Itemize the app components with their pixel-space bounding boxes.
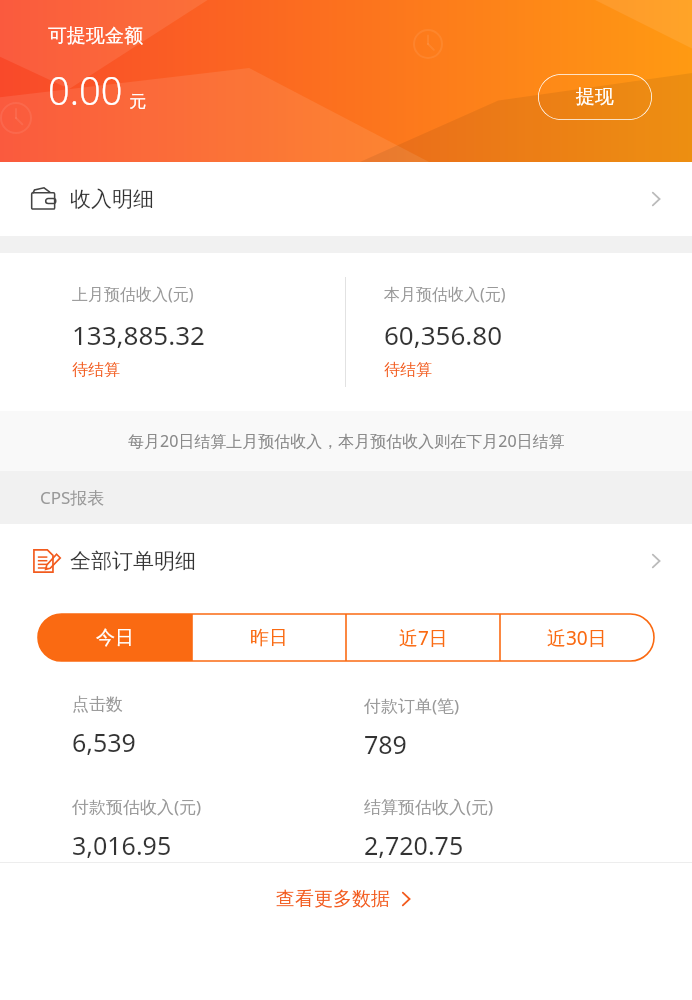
staticText: CPS报表 bbox=[40, 486, 105, 509]
button[interactable]: 近30日 bbox=[500, 614, 654, 661]
button[interactable]: 收入明细 bbox=[0, 162, 692, 236]
button[interactable]: 查看更多数据 bbox=[0, 863, 692, 935]
staticText: 每月20日结算上月预估收入，本月预估收入则在下月20日结算 bbox=[128, 430, 565, 452]
staticText: 昨日 bbox=[250, 626, 288, 650]
staticText: 近30日 bbox=[547, 625, 607, 651]
staticText: 6,539 bbox=[72, 725, 136, 759]
staticText: 提现 bbox=[576, 85, 614, 109]
staticText: 全部订单明细 bbox=[70, 548, 196, 574]
staticText: 本月预估收入(元) bbox=[384, 283, 506, 305]
staticText: 结算预估收入(元) bbox=[364, 795, 494, 818]
staticText: 2,720.75 bbox=[364, 828, 464, 862]
button[interactable]: 昨日 bbox=[192, 614, 346, 661]
staticText: 0.00 bbox=[48, 64, 123, 116]
button[interactable]: 全部订单明细 bbox=[0, 524, 692, 598]
button[interactable]: 提现 bbox=[538, 74, 652, 120]
staticText: 查看更多数据 bbox=[276, 887, 390, 911]
staticText: 付款订单(笔) bbox=[364, 694, 460, 717]
staticText: 60,356.80 bbox=[384, 317, 503, 352]
staticText: 近7日 bbox=[399, 625, 448, 651]
staticText: 待结算 bbox=[72, 360, 120, 380]
staticText: 收入明细 bbox=[70, 186, 154, 212]
staticText: 可提现金额 bbox=[48, 24, 143, 48]
staticText: 元 bbox=[129, 91, 146, 112]
staticText: 上月预估收入(元) bbox=[72, 283, 194, 305]
staticText: 今日 bbox=[96, 626, 134, 650]
staticText: 付款预估收入(元) bbox=[72, 795, 202, 818]
staticText: 待结算 bbox=[384, 360, 432, 380]
staticText: 133,885.32 bbox=[72, 317, 205, 352]
staticText: 点击数 bbox=[72, 694, 123, 715]
button[interactable]: 今日 bbox=[38, 614, 192, 661]
staticText: 789 bbox=[364, 727, 407, 761]
button[interactable]: 近7日 bbox=[346, 614, 500, 661]
staticText: 3,016.95 bbox=[72, 828, 172, 862]
